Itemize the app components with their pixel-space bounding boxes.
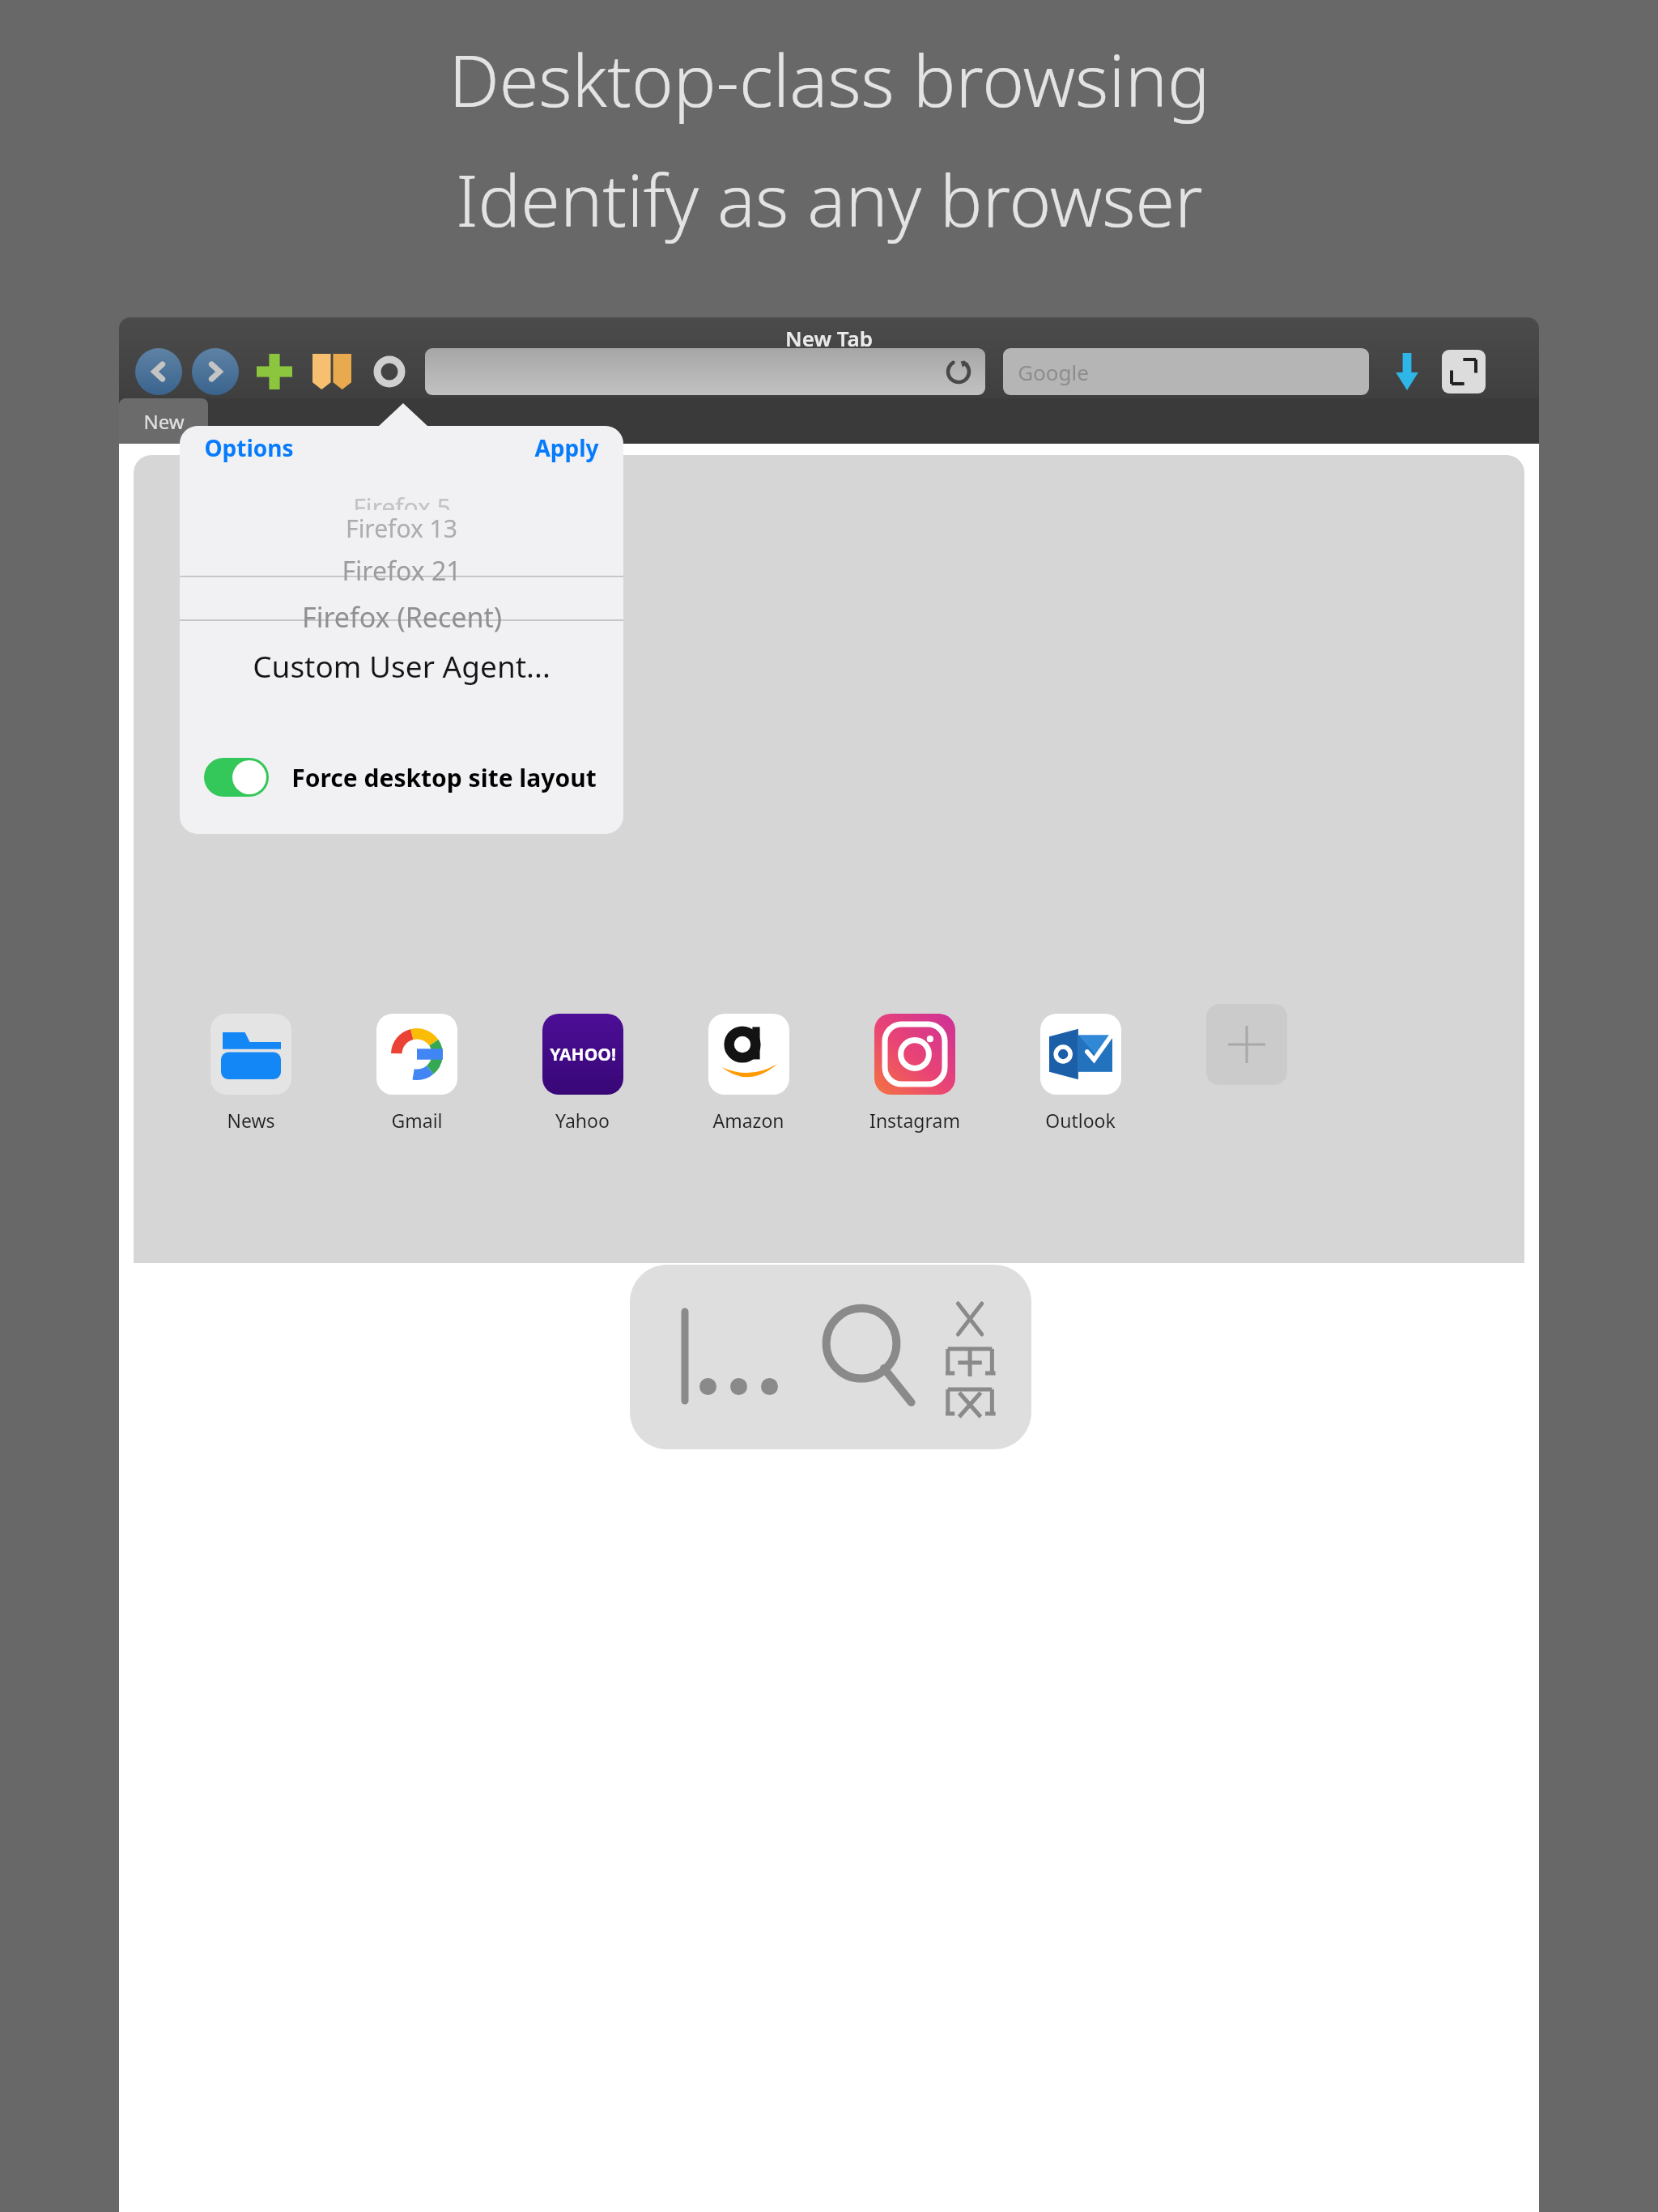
button[interactable]: Apply — [534, 432, 599, 463]
button[interactable]: News — [168, 1014, 334, 1133]
staticText: Options — [204, 432, 294, 463]
staticText: Gmail — [391, 1108, 443, 1133]
staticText: Custom User Agent... — [253, 645, 551, 686]
staticText: Firefox 5 — [353, 491, 451, 510]
staticText: Firefox 21 — [342, 553, 461, 589]
button[interactable]: Amazon — [665, 1014, 831, 1133]
button[interactable]: Downloads — [1388, 353, 1426, 390]
button[interactable]: Google — [1003, 348, 1369, 395]
button[interactable]: Forward — [192, 348, 239, 395]
button[interactable]: Instagram — [831, 1014, 997, 1133]
button[interactable]: Gmail — [334, 1014, 500, 1133]
staticText: Identify as any browser — [456, 151, 1203, 248]
button[interactable]: Custom User Agent... — [180, 644, 623, 687]
staticText: Firefox 13 — [346, 512, 457, 545]
staticText: Instagram — [869, 1108, 960, 1133]
staticText: Google — [1018, 358, 1089, 386]
staticText: News — [227, 1108, 275, 1133]
staticText: New — [143, 408, 185, 435]
button[interactable]: Force desktop site layout — [204, 758, 597, 797]
staticText: Force desktop site layout — [291, 761, 597, 794]
button[interactable]: Tabs — [1442, 350, 1486, 393]
button[interactable]: New — [119, 398, 208, 444]
staticText: New Tab — [785, 324, 873, 352]
staticText: Yahoo — [555, 1108, 610, 1133]
staticText: Firefox (Recent) — [302, 598, 502, 636]
staticText: Amazon — [712, 1108, 784, 1133]
button[interactable]: Back — [135, 348, 182, 395]
staticText: Outlook — [1045, 1108, 1116, 1133]
staticText: Apply — [534, 432, 599, 463]
staticText: Desktop-class browsing — [449, 31, 1210, 128]
button[interactable]: Outlook — [997, 1014, 1163, 1133]
staticText: YAHOO! — [550, 1043, 616, 1066]
button[interactable]: Add favorite — [1206, 1004, 1287, 1085]
button[interactable] — [425, 348, 985, 395]
button[interactable]: YAHOO! — [500, 1014, 665, 1133]
button[interactable]: Bookmarks — [312, 351, 352, 392]
button[interactable]: New tab — [255, 352, 294, 391]
button[interactable]: Options — [204, 432, 294, 463]
button[interactable]: User agent options — [370, 352, 409, 391]
